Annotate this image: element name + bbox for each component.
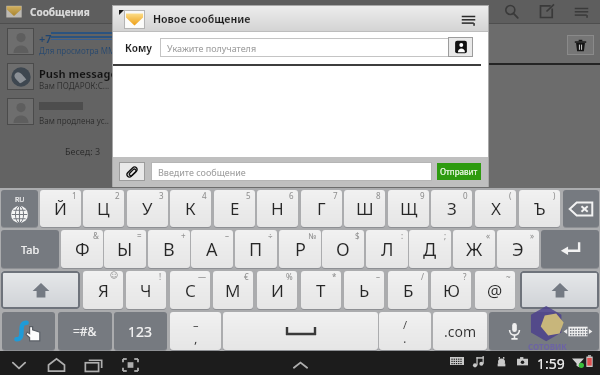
staticText: О: [336, 237, 350, 262]
button[interactable]: Вам продлена ус..: [0, 98, 113, 130]
staticText: +: [181, 230, 186, 241]
button[interactable]: Back: [7, 353, 31, 375]
button[interactable]: Я: [83, 271, 123, 309]
staticText: –: [225, 230, 229, 241]
button[interactable]: /: [379, 312, 431, 350]
button[interactable]: Shift: [520, 271, 599, 309]
button[interactable]: Push message: [0, 63, 113, 95]
button[interactable]: Attach: [119, 162, 145, 181]
staticText: Д: [423, 237, 437, 262]
staticText: Новое сообщение: [153, 12, 251, 26]
button[interactable]: М: [213, 271, 253, 309]
button[interactable]: Shift: [1, 271, 80, 309]
button[interactable]: С: [170, 271, 210, 309]
button[interactable]: Tab: [1, 230, 59, 268]
button[interactable]: Ь: [344, 271, 384, 309]
button[interactable]: Ц: [83, 190, 124, 227]
button[interactable]: Ф: [61, 230, 103, 268]
staticText: /: [403, 317, 408, 332]
button[interactable]: @: [475, 271, 515, 309]
button[interactable]: More options: [456, 7, 480, 31]
staticText: М: [225, 279, 241, 302]
button[interactable]: .com: [433, 312, 487, 350]
staticText: 9: [420, 190, 425, 201]
staticText: А: [206, 237, 218, 262]
staticText: =#&: [73, 323, 97, 339]
button[interactable]: Ш: [344, 190, 385, 227]
button[interactable]: Home: [44, 353, 68, 375]
staticText: Я: [98, 279, 109, 302]
button[interactable]: Г: [301, 190, 342, 227]
staticText: И: [271, 279, 284, 302]
staticText: №: [308, 230, 317, 241]
staticText: Кому: [125, 41, 153, 55]
button[interactable]: Ы: [104, 230, 146, 268]
button[interactable]: О: [322, 230, 364, 268]
staticText: ☺: [110, 271, 119, 280]
staticText: У: [142, 197, 153, 220]
button[interactable]: Voice input and keyboard: [489, 312, 599, 350]
staticText: Tab: [21, 242, 40, 257]
staticText: ;: [444, 230, 447, 241]
staticText: +7: [39, 31, 52, 46]
button[interactable]: Ж: [453, 230, 495, 268]
button[interactable]: +7: [0, 28, 113, 60]
staticText: Бесед: 3: [65, 145, 101, 157]
button[interactable]: Б: [388, 271, 428, 309]
button[interactable]: К: [170, 190, 211, 227]
button[interactable]: Search: [498, 0, 524, 23]
staticText: Ъ: [534, 197, 546, 220]
button[interactable]: =#&: [58, 312, 112, 350]
button[interactable]: Н: [257, 190, 298, 227]
button[interactable]: Change language: [1, 190, 38, 227]
button[interactable]: Э: [497, 230, 539, 268]
staticText: «: [486, 230, 491, 241]
button[interactable]: Ъ: [519, 190, 560, 227]
button[interactable]: Ю: [431, 271, 471, 309]
button[interactable]: У: [127, 190, 168, 227]
button[interactable]: More options: [568, 0, 594, 23]
button[interactable]: И: [257, 271, 297, 309]
button[interactable]: Е: [214, 190, 255, 227]
button[interactable]: Отправит: [437, 163, 481, 180]
button[interactable]: Л: [366, 230, 408, 268]
staticText: Т: [316, 279, 326, 302]
button[interactable]: Ч: [126, 271, 166, 309]
staticText: Й: [54, 197, 67, 220]
button[interactable]: Enter: [541, 230, 599, 268]
button[interactable]: А: [191, 230, 233, 268]
button[interactable]: Space: [223, 312, 378, 350]
staticText: 2: [115, 190, 120, 201]
button[interactable]: П: [235, 230, 277, 268]
staticText: Е: [230, 197, 240, 220]
button[interactable]: Й: [40, 190, 81, 227]
staticText: Ю: [443, 279, 460, 302]
button[interactable]: Choose contact: [448, 37, 473, 57]
button[interactable]: –: [170, 312, 221, 350]
button[interactable]: Р: [279, 230, 321, 268]
button[interactable]: Введите сообщение: [151, 162, 432, 181]
button[interactable]: New message: [533, 0, 559, 23]
button[interactable]: Show notifications: [288, 353, 312, 375]
staticText: Ч: [140, 279, 152, 302]
staticText: Г: [317, 197, 326, 220]
button[interactable]: Delete: [567, 35, 594, 55]
staticText: RU: [15, 195, 25, 205]
button[interactable]: З: [431, 190, 472, 227]
staticText: .: [403, 329, 407, 347]
button[interactable]: Укажите получателя: [160, 38, 449, 57]
button[interactable]: Screenshot: [118, 353, 142, 375]
button[interactable]: Щ: [388, 190, 429, 227]
staticText: –: [193, 317, 199, 332]
button[interactable]: 123: [114, 312, 167, 350]
button[interactable]: Х: [475, 190, 516, 227]
button[interactable]: Handwriting: [2, 312, 55, 350]
button[interactable]: Backspace: [563, 190, 599, 227]
staticText: Укажите получателя: [167, 42, 257, 54]
button[interactable]: В: [148, 230, 190, 268]
staticText: Н: [271, 197, 284, 220]
button[interactable]: Т: [301, 271, 341, 309]
button[interactable]: Д: [409, 230, 451, 268]
button[interactable]: Recents: [81, 353, 105, 375]
staticText: ?: [463, 271, 467, 282]
